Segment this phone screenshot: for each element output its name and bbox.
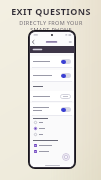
button[interactable] [30, 150, 74, 153]
button[interactable] [30, 133, 74, 136]
button[interactable]: Toggle [30, 70, 74, 81]
button[interactable]: Toggle [61, 73, 71, 78]
button[interactable] [30, 144, 74, 147]
button[interactable]: Toggle [61, 107, 71, 112]
button[interactable] [30, 38, 74, 46]
staticText: SMART PHONE [30, 26, 72, 33]
button[interactable]: Toggle [61, 59, 71, 64]
button[interactable] [30, 46, 74, 53]
staticText: EXIT QUESTIONS [11, 5, 91, 17]
button[interactable] [30, 127, 74, 130]
button[interactable]: Next [62, 153, 70, 161]
button[interactable] [30, 91, 74, 101]
button[interactable]: Toggle [30, 56, 74, 67]
button[interactable]: Toggle [30, 103, 74, 115]
staticText: DIRECTLY FROM YOUR [19, 19, 83, 26]
button[interactable] [30, 121, 74, 124]
